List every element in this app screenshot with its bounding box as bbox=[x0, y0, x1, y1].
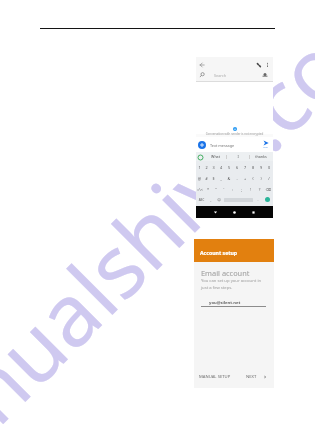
staticText: 3 bbox=[210, 165, 217, 170]
staticText: thanks bbox=[250, 154, 272, 159]
button[interactable]: NEXT bbox=[244, 371, 271, 382]
staticText: ; bbox=[237, 187, 246, 192]
staticText: ' bbox=[220, 187, 228, 192]
staticText: 2 bbox=[203, 165, 210, 170]
staticText: You can set up your account in just a fe… bbox=[201, 278, 262, 290]
staticText: =\< bbox=[196, 187, 204, 192]
button[interactable]: Back bbox=[198, 61, 206, 69]
staticText: , bbox=[207, 197, 215, 202]
staticText: 8 bbox=[249, 165, 257, 170]
staticText: Text message bbox=[210, 143, 235, 148]
staticText: 5 bbox=[225, 165, 233, 170]
staticText: " bbox=[212, 187, 220, 192]
button[interactable]: More options bbox=[264, 61, 271, 68]
staticText: Email account bbox=[201, 268, 250, 278]
staticText: 9 bbox=[257, 165, 265, 170]
staticText: Account setup bbox=[200, 249, 238, 256]
staticText: What bbox=[205, 154, 226, 159]
staticText: # bbox=[203, 176, 210, 181]
staticText: ☺ bbox=[215, 198, 223, 202]
staticText: MANUAL SETUP bbox=[199, 374, 231, 380]
button[interactable]: Back bbox=[213, 210, 218, 215]
staticText: ? bbox=[255, 187, 264, 192]
staticText: ABC bbox=[196, 198, 207, 202]
staticText: you@silent.net bbox=[209, 300, 241, 306]
staticText: 6 bbox=[233, 165, 241, 170]
staticText: @ bbox=[196, 176, 203, 181]
staticText: & bbox=[225, 176, 233, 181]
staticText: 7 bbox=[241, 165, 249, 170]
staticText: 4 bbox=[217, 165, 225, 170]
staticText: $ bbox=[210, 176, 217, 181]
staticText: manualshive.com bbox=[0, 0, 315, 447]
staticText: * bbox=[204, 187, 212, 192]
staticText: ) bbox=[257, 176, 265, 181]
staticText: : bbox=[228, 187, 237, 192]
button[interactable]: Call bbox=[255, 61, 263, 69]
staticText: ! bbox=[246, 187, 255, 192]
staticText: NEXT bbox=[246, 374, 257, 380]
staticText: - bbox=[233, 176, 241, 181]
button[interactable]: MANUAL SETUP bbox=[197, 371, 237, 382]
button[interactable]: Recents bbox=[251, 210, 256, 215]
staticText: I bbox=[227, 154, 249, 159]
staticText: 0 bbox=[265, 165, 273, 170]
staticText: 1 bbox=[196, 165, 203, 170]
staticText: / bbox=[265, 176, 273, 181]
staticText: ⌫ bbox=[264, 187, 273, 191]
staticText: ( bbox=[249, 176, 257, 181]
staticText: Search bbox=[214, 73, 227, 78]
staticText: Conversation with sender is not encrypte… bbox=[196, 132, 273, 136]
button[interactable]: Home bbox=[232, 210, 237, 215]
staticText: + bbox=[241, 176, 249, 181]
staticText: _ bbox=[217, 176, 225, 181]
staticText: SMS bbox=[261, 146, 270, 149]
